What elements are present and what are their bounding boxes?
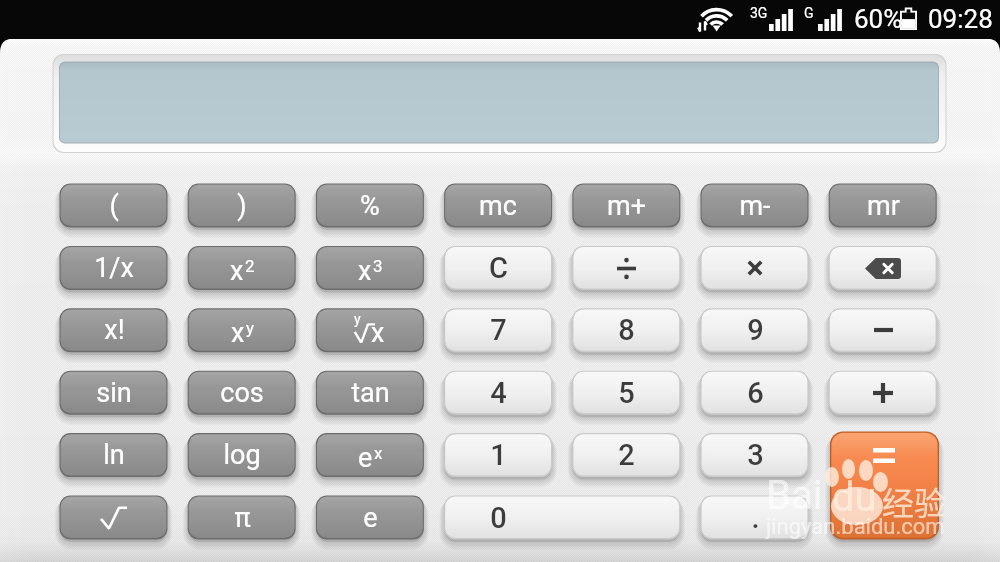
button[interactable]: cos (188, 371, 296, 415)
button[interactable]: Equals (830, 432, 939, 540)
staticText: . (751, 501, 760, 535)
button[interactable]: Divide (572, 246, 680, 290)
staticText: sin (96, 377, 132, 409)
button[interactable]: . (701, 496, 809, 540)
staticText: 6 (747, 376, 764, 410)
button[interactable]: C (444, 246, 552, 290)
staticText: 60% (854, 4, 903, 34)
button[interactable]: ( (60, 184, 168, 228)
staticText: ( (109, 190, 119, 222)
staticText: m+ (607, 190, 646, 222)
button[interactable]: 3 (701, 433, 809, 477)
staticText: 经验 (882, 478, 947, 524)
button[interactable]: m+ (572, 184, 680, 228)
staticText: mr (867, 190, 900, 222)
staticText: 1/x (94, 252, 134, 284)
button[interactable]: π (188, 496, 296, 540)
button[interactable]: sin (60, 371, 168, 415)
staticText: x (371, 317, 385, 349)
staticText: mc (479, 190, 517, 222)
button[interactable]: 4 (444, 371, 552, 415)
staticText: x! (104, 314, 125, 346)
staticText: 5 (618, 376, 635, 410)
button[interactable]: 5 (572, 371, 680, 415)
button[interactable]: x (188, 308, 296, 352)
staticText: ln (103, 439, 125, 471)
button[interactable]: 7 (444, 308, 552, 352)
button[interactable]: log (188, 433, 296, 477)
staticText: y (354, 311, 361, 327)
button[interactable]: tan (316, 371, 424, 415)
button[interactable]: Nth root (316, 308, 424, 352)
staticText: 09:28 (928, 4, 993, 34)
staticText: 4 (490, 376, 507, 410)
staticText: x (230, 255, 244, 287)
staticText: 7 (490, 313, 507, 347)
staticText: π (234, 502, 251, 534)
staticText: 2 (245, 256, 255, 276)
staticText: 2 (618, 438, 635, 472)
button[interactable]: Backspace (829, 246, 937, 290)
button[interactable]: mr (829, 184, 937, 228)
staticText: e (363, 502, 378, 534)
button[interactable]: 8 (572, 308, 680, 352)
button[interactable]: e (316, 433, 424, 477)
staticText: 9 (747, 313, 764, 347)
staticText: Bai (766, 472, 823, 519)
staticText: y (246, 318, 255, 338)
button[interactable]: e (316, 496, 424, 540)
staticText: C (489, 251, 508, 285)
staticText: du (832, 474, 877, 521)
button[interactable]: mc (444, 184, 552, 228)
button[interactable]: x (316, 246, 424, 290)
button[interactable]: ) (188, 184, 296, 228)
staticText: x (374, 443, 383, 463)
staticText: 3 (373, 256, 383, 276)
staticText: % (360, 190, 380, 222)
staticText: m- (739, 190, 771, 222)
staticText: 3 (747, 438, 764, 472)
staticText: ) (237, 190, 247, 222)
button[interactable]: % (316, 184, 424, 228)
button[interactable]: x! (60, 308, 168, 352)
staticText: 1 (490, 438, 507, 472)
button[interactable]: 2 (572, 433, 680, 477)
staticText: G (804, 5, 814, 21)
button[interactable]: 1/x (60, 246, 168, 290)
button[interactable]: 6 (701, 371, 809, 415)
button[interactable]: 9 (701, 308, 809, 352)
staticText: tan (351, 377, 390, 409)
staticText: x (358, 255, 372, 287)
button[interactable]: ln (60, 433, 168, 477)
staticText: 0 (490, 501, 507, 535)
button[interactable]: Multiply (701, 246, 809, 290)
button[interactable]: x (188, 246, 296, 290)
button[interactable]: Plus (829, 371, 937, 415)
button[interactable]: 1 (444, 433, 552, 477)
staticText: jingyan.baidu.com (766, 514, 945, 540)
staticText: cos (220, 377, 264, 409)
button[interactable]: Square root (60, 496, 168, 540)
button[interactable]: m- (701, 184, 809, 228)
staticText: x (231, 317, 245, 349)
staticText: 8 (618, 313, 635, 347)
staticText: log (223, 439, 261, 471)
button[interactable]: 0 (444, 496, 680, 540)
staticText: 3G (750, 5, 768, 21)
staticText: e (358, 442, 373, 474)
button[interactable]: Minus (829, 308, 937, 352)
